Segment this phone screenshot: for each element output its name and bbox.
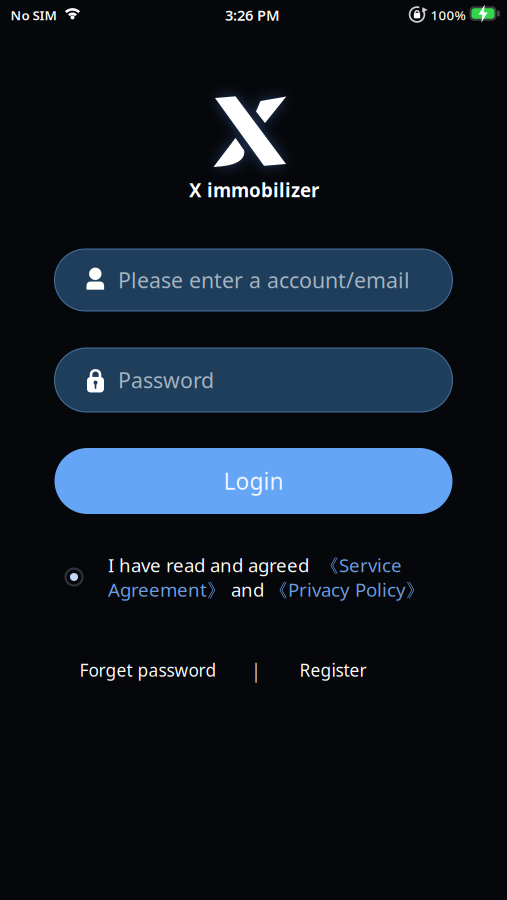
staticText: Login (223, 466, 283, 496)
button[interactable]: Register (299, 658, 366, 681)
staticText: Forget password (79, 658, 216, 681)
staticText: Please enter a account/email (118, 266, 410, 294)
staticText: 《Privacy Policy》 (269, 577, 425, 602)
staticText: No SIM (10, 6, 56, 24)
button[interactable]: Agreement》 (108, 577, 226, 602)
staticText: and (226, 577, 269, 602)
staticText: 100% (430, 6, 465, 24)
button[interactable]: Account or email (54, 249, 452, 311)
staticText: Register (299, 658, 366, 681)
button[interactable]: Agree to terms (62, 565, 86, 589)
button[interactable]: Login (54, 448, 452, 514)
staticText: I have read and agreed (108, 553, 314, 577)
staticText: 3:26 PM (225, 5, 280, 25)
button[interactable]: 《Privacy Policy》 (269, 577, 425, 602)
staticText: X immobilizer (189, 178, 319, 202)
staticText: Agreement》 (108, 577, 226, 602)
staticText: | (250, 657, 261, 683)
button[interactable]: 《Service (314, 553, 402, 577)
button[interactable]: Forget password (79, 658, 216, 681)
button[interactable]: Password (54, 348, 452, 412)
staticText: Password (118, 366, 214, 394)
staticText: 《Service (314, 553, 402, 577)
